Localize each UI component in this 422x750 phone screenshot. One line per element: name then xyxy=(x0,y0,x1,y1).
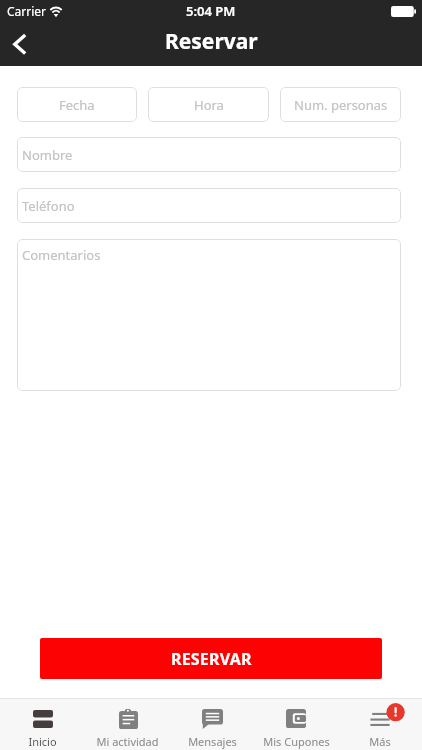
button[interactable]: Num. personas xyxy=(280,87,401,122)
staticText: Más xyxy=(369,734,391,749)
button[interactable]: RESERVAR xyxy=(40,638,382,679)
staticText: Nombre xyxy=(22,146,73,164)
staticText: Hora xyxy=(194,96,224,114)
button[interactable]: Más xyxy=(338,698,422,750)
button[interactable]: Inicio xyxy=(0,698,85,750)
staticText: Teléfono xyxy=(22,197,75,215)
button[interactable]: Mensajes xyxy=(170,698,254,750)
staticText: Mis Cupones xyxy=(263,734,330,749)
staticText: Reservar xyxy=(165,27,258,56)
staticText: Mi actividad xyxy=(96,734,159,749)
staticText: Fecha xyxy=(59,96,95,114)
staticText: Comentarios xyxy=(22,246,101,264)
button[interactable]: Hora xyxy=(148,87,269,122)
staticText: RESERVAR xyxy=(171,648,252,670)
staticText: Carrier xyxy=(7,3,47,19)
staticText: Mensajes xyxy=(188,734,237,749)
button[interactable]: Mis Cupones xyxy=(254,698,338,750)
staticText: 5:04 PM xyxy=(186,2,236,20)
staticText: Num. personas xyxy=(294,96,388,114)
button[interactable]: Back xyxy=(0,22,40,66)
button[interactable]: Nombre xyxy=(17,137,401,172)
button[interactable]: Fecha xyxy=(17,87,137,122)
button[interactable]: Mi actividad xyxy=(85,698,170,750)
button[interactable]: Teléfono xyxy=(17,188,401,223)
staticText: Inicio xyxy=(28,734,57,749)
button[interactable]: Comentarios xyxy=(17,239,401,391)
